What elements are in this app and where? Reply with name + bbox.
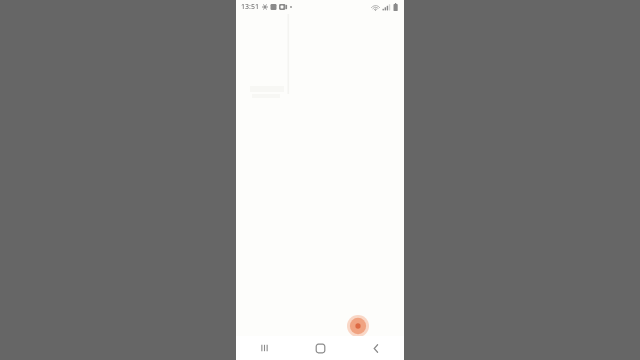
button[interactable]: Profile	[347, 315, 369, 337]
button[interactable]: Back	[348, 336, 404, 360]
staticText: 13:51	[241, 2, 259, 12]
button[interactable]: Home	[292, 336, 348, 360]
button[interactable]: Recent apps	[236, 336, 292, 360]
